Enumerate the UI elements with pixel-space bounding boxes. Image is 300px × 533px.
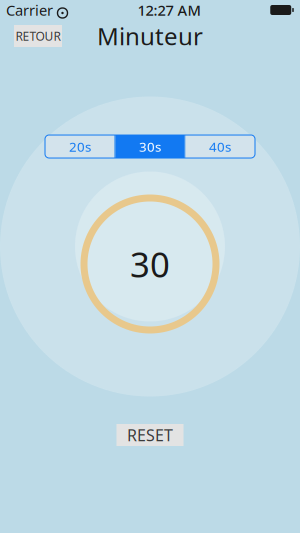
- button[interactable]: RETOUR: [14, 25, 62, 47]
- staticText: Carrier: [6, 0, 53, 20]
- staticText: 30: [130, 241, 170, 287]
- staticText: 40s: [209, 138, 231, 155]
- staticText: 12:27 AM: [137, 0, 200, 20]
- staticText: [53, 0, 57, 20]
- staticText: 20s: [69, 138, 91, 155]
- staticText: 30s: [139, 138, 161, 155]
- button[interactable]: 40s: [185, 135, 254, 158]
- staticText: Minuteur: [97, 20, 203, 52]
- staticText: RETOUR: [15, 28, 60, 44]
- button[interactable]: 30s: [115, 135, 184, 158]
- button[interactable]: RESET: [116, 424, 183, 446]
- button[interactable]: 20s: [45, 135, 114, 158]
- staticText: RESET: [127, 424, 173, 446]
